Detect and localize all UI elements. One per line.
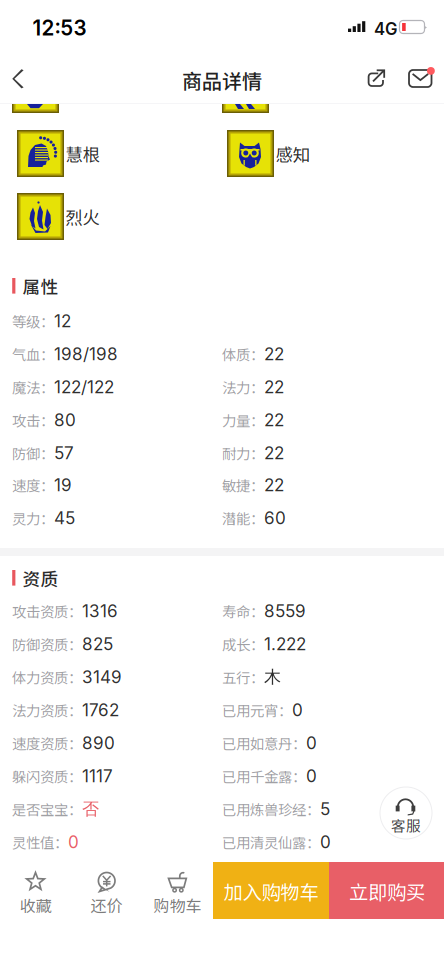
staticText: 80 [54, 410, 76, 430]
staticText: 商品详情 [182, 65, 262, 94]
staticText: 感知 [275, 141, 309, 167]
staticText: 速度： [12, 475, 54, 495]
staticText: 木 [264, 666, 281, 688]
button[interactable]: Back [0, 57, 44, 101]
staticText: 防御： [12, 443, 54, 463]
staticText: 122/122 [54, 377, 114, 397]
staticText: 8559 [264, 601, 306, 621]
staticText: 否 [82, 798, 99, 820]
staticText: 1762 [82, 700, 119, 720]
staticText: 已用炼兽珍经： [222, 799, 320, 819]
staticText: 1.222 [264, 634, 306, 654]
staticText: 4G [374, 19, 397, 39]
staticText: 890 [82, 733, 115, 753]
staticText: 烈火 [65, 204, 99, 230]
staticText: 灵性值： [12, 832, 68, 852]
staticText: 198/198 [54, 344, 118, 364]
button[interactable]: Share [356, 58, 398, 100]
staticText: 22 [264, 344, 284, 364]
staticText: 1316 [82, 601, 118, 621]
staticText: 攻击： [12, 410, 54, 430]
staticText: 已用千金露： [222, 766, 306, 786]
staticText: 加入购物车 [223, 877, 318, 905]
staticText: 0 [292, 700, 303, 720]
button[interactable]: 加入购物车 [213, 862, 329, 919]
staticText: 寿命： [222, 601, 264, 621]
staticText: 体力资质： [12, 667, 82, 687]
staticText: 敏捷： [222, 475, 264, 495]
button[interactable]: 慧根 [17, 130, 167, 177]
staticText: 825 [82, 634, 113, 654]
staticText: 57 [54, 443, 74, 463]
button[interactable]: 还价 [71, 862, 142, 919]
staticText: 已用清灵仙露： [222, 832, 320, 852]
button[interactable]: 烈火 [17, 193, 167, 240]
staticText: 等级： [12, 311, 54, 331]
button[interactable]: 感知 [227, 130, 377, 177]
staticText: 19 [54, 475, 72, 495]
staticText: 0 [306, 733, 317, 753]
staticText: 灵力： [12, 508, 54, 528]
button[interactable]: 客服 [380, 787, 432, 839]
staticText: 22 [264, 410, 284, 430]
staticText: 1117 [82, 766, 113, 786]
staticText: 0 [306, 766, 317, 786]
staticText: 资质 [22, 565, 58, 591]
staticText: 5 [320, 799, 330, 819]
staticText: 22 [264, 475, 284, 495]
staticText: 气血： [12, 344, 54, 364]
staticText: 耐力： [222, 443, 264, 463]
staticText: 12:53 [32, 15, 86, 40]
staticText: 购物车 [153, 893, 201, 917]
staticText: 22 [264, 377, 284, 397]
staticText: 五行： [222, 667, 264, 687]
staticText: 收藏 [19, 893, 51, 917]
staticText: 是否宝宝： [12, 799, 82, 819]
staticText: 成长： [222, 634, 264, 654]
staticText: 立即购买 [349, 877, 425, 905]
staticText: 魔法： [12, 377, 54, 397]
staticText: 22 [264, 443, 284, 463]
button[interactable]: 立即购买 [329, 862, 444, 919]
staticText: 0 [68, 832, 79, 852]
staticText: 0 [320, 832, 331, 852]
staticText: 体质： [222, 344, 264, 364]
staticText: 60 [264, 508, 286, 528]
staticText: 潜能： [222, 508, 264, 528]
staticText: 防御资质： [12, 634, 82, 654]
staticText: 12 [54, 311, 71, 331]
staticText: 还价 [90, 893, 122, 917]
staticText: 已用元宵： [222, 700, 292, 720]
staticText: 属性 [22, 273, 58, 299]
staticText: 已用如意丹： [222, 733, 306, 753]
button[interactable]: Messages [401, 58, 444, 100]
staticText: 客服 [391, 814, 421, 836]
staticText: 法力： [222, 377, 264, 397]
staticText: 慧根 [65, 141, 99, 167]
staticText: 力量： [222, 410, 264, 430]
button[interactable]: 收藏 [0, 862, 71, 919]
staticText: 躲闪资质： [12, 766, 82, 786]
staticText: 速度资质： [12, 733, 82, 753]
staticText: 45 [54, 508, 75, 528]
staticText: 3149 [82, 667, 122, 687]
button[interactable]: 购物车 [142, 862, 213, 919]
staticText: 攻击资质： [12, 601, 82, 621]
staticText: 法力资质： [12, 700, 82, 720]
